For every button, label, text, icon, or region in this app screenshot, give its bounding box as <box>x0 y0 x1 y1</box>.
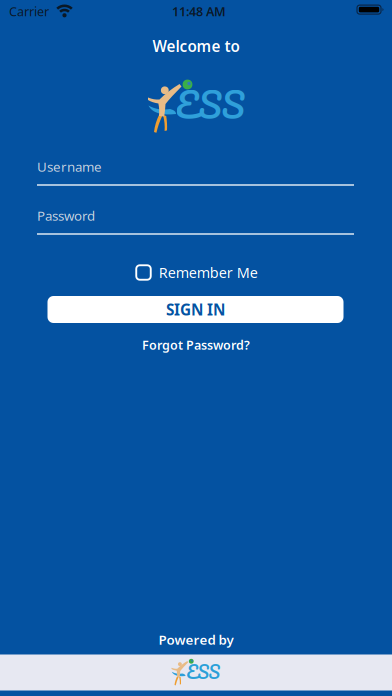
staticText: SIGN IN <box>166 299 225 320</box>
staticText: Welcome to <box>152 36 239 56</box>
staticText: Forgot Password? <box>142 336 250 354</box>
staticText: Powered by <box>158 630 233 649</box>
button[interactable]: SIGN IN <box>47 296 343 323</box>
staticText: ESS <box>175 75 244 134</box>
staticText: ESS <box>186 657 219 686</box>
staticText: 11:48 AM <box>172 3 226 20</box>
button[interactable]: Remember Me <box>136 263 258 282</box>
staticText: Carrier <box>9 3 49 20</box>
button[interactable]: Password <box>37 206 354 235</box>
button[interactable]: Forgot Password? <box>142 336 250 354</box>
button[interactable]: Username <box>37 157 354 186</box>
staticText: Username <box>37 157 102 176</box>
staticText: Password <box>37 206 95 225</box>
staticText: Remember Me <box>159 263 258 282</box>
